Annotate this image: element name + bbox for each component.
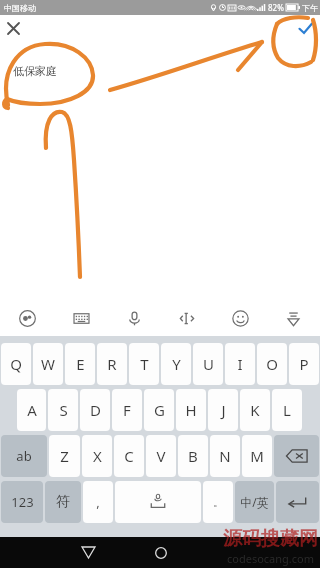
button[interactable]: J	[208, 389, 238, 431]
staticText: M	[250, 446, 264, 466]
button[interactable]: ,	[83, 481, 113, 523]
button[interactable]: Home	[145, 537, 176, 568]
staticText: N	[219, 446, 231, 466]
staticText: D	[90, 400, 101, 420]
staticText: F	[123, 400, 131, 420]
button[interactable]: D	[80, 389, 110, 431]
button[interactable]: 123	[1, 481, 43, 523]
button[interactable]: C	[114, 435, 144, 477]
button[interactable]: X	[82, 435, 112, 477]
staticText: P	[299, 354, 309, 374]
staticText: O	[266, 354, 278, 374]
button[interactable]: N	[210, 435, 240, 477]
button[interactable]: T	[129, 343, 159, 385]
staticText: U	[203, 354, 214, 374]
button[interactable]: Voice input	[108, 300, 161, 336]
button[interactable]: B	[178, 435, 208, 477]
button[interactable]: ab	[1, 435, 47, 477]
button[interactable]: L	[272, 389, 302, 431]
staticText: W	[41, 354, 55, 374]
staticText: B	[188, 446, 198, 466]
button[interactable]: Back	[73, 537, 104, 568]
staticText: E	[76, 354, 85, 374]
button[interactable]: Q	[1, 343, 31, 385]
button[interactable]: Emoji	[214, 300, 267, 336]
staticText: Y	[172, 354, 181, 374]
button[interactable]: R	[97, 343, 127, 385]
button[interactable]: G	[144, 389, 174, 431]
staticText: H	[185, 400, 197, 420]
button[interactable]: P	[289, 343, 319, 385]
staticText: 中国移动	[4, 3, 36, 13]
staticText: 82%	[268, 2, 284, 13]
staticText: T	[140, 354, 149, 374]
button[interactable]: M	[242, 435, 272, 477]
staticText: Q	[10, 354, 22, 374]
button[interactable]: 。	[203, 481, 233, 523]
button[interactable]: Z	[49, 435, 80, 477]
button[interactable]: Space	[115, 481, 201, 523]
staticText: 中/英	[240, 494, 269, 510]
button[interactable]: W	[33, 343, 63, 385]
staticText: S	[59, 400, 68, 420]
staticText: C	[124, 446, 134, 466]
button[interactable]: A	[17, 389, 46, 431]
staticText: I	[237, 354, 243, 374]
button[interactable]: F	[112, 389, 142, 431]
button[interactable]: O	[257, 343, 287, 385]
staticText: J	[221, 400, 226, 420]
button[interactable]: K	[240, 389, 270, 431]
staticText: codesocang.com	[227, 551, 315, 566]
staticText: 源码搜藏网	[223, 527, 318, 551]
staticText: 。	[213, 495, 224, 509]
staticText: 123	[11, 493, 34, 511]
button[interactable]: H	[176, 389, 206, 431]
button[interactable]: Y	[161, 343, 191, 385]
staticText: 符	[56, 493, 70, 511]
button[interactable]: Backspace	[274, 435, 319, 477]
button[interactable]: Cursor	[161, 300, 214, 336]
button[interactable]: 中/英	[235, 481, 274, 523]
staticText: ab	[16, 447, 32, 465]
button[interactable]: Close	[0, 15, 27, 42]
button[interactable]: Settings	[0, 300, 54, 336]
button[interactable]: Keyboard layout	[54, 300, 108, 336]
button[interactable]: V	[146, 435, 176, 477]
staticText: Z	[60, 446, 69, 466]
staticText: V	[156, 446, 166, 466]
staticText: L	[283, 400, 291, 420]
staticText: G	[154, 400, 165, 420]
button[interactable]: Enter	[276, 481, 319, 523]
staticText: A	[27, 400, 37, 420]
staticText: 低保家庭	[13, 64, 57, 78]
staticText: X	[93, 446, 102, 466]
button[interactable]: U	[193, 343, 223, 385]
staticText: 下午	[302, 3, 318, 13]
button[interactable]: I	[225, 343, 255, 385]
button[interactable]: Hide keyboard	[267, 300, 320, 336]
button[interactable]: E	[65, 343, 95, 385]
button[interactable]: Confirm	[290, 15, 320, 42]
button[interactable]: 符	[45, 481, 81, 523]
staticText: K	[250, 400, 260, 420]
staticText: R	[107, 354, 117, 374]
staticText: ,	[96, 493, 100, 511]
button[interactable]: S	[48, 389, 78, 431]
